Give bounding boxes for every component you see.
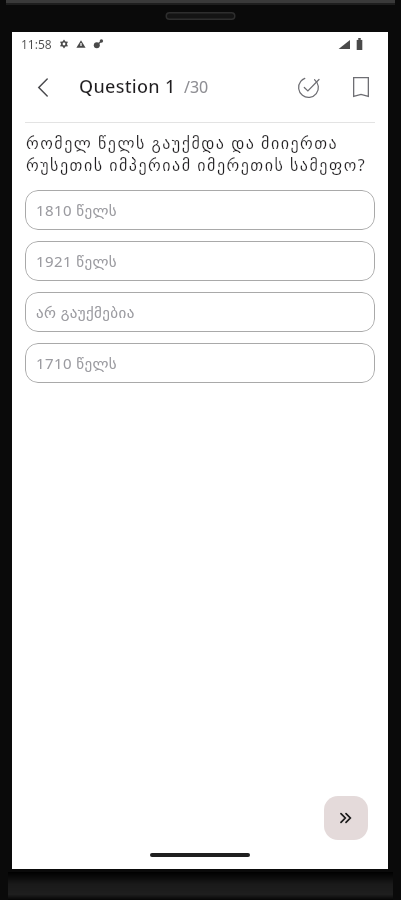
button[interactable]: 1810 წელს bbox=[25, 190, 375, 230]
button[interactable]: Back bbox=[22, 66, 64, 108]
staticText: არ გაუქმებია bbox=[36, 302, 135, 322]
staticText: /30 bbox=[184, 76, 209, 98]
button[interactable]: Bookmark bbox=[340, 66, 382, 108]
staticText: 11:58 bbox=[21, 36, 52, 52]
button[interactable]: არ გაუქმებია bbox=[25, 292, 375, 332]
staticText: 1921 წელს bbox=[36, 251, 118, 271]
button[interactable]: Mark answered bbox=[287, 66, 329, 108]
staticText: 1710 წელს bbox=[36, 353, 118, 373]
button[interactable]: 1921 წელს bbox=[25, 241, 375, 281]
button[interactable]: Next question bbox=[324, 796, 368, 840]
staticText: რომელ წელს გაუქმდა და მიიერთა რუსეთის იმ… bbox=[26, 132, 374, 175]
staticText: Question 1 bbox=[79, 74, 176, 99]
staticText: 1810 წელს bbox=[36, 200, 118, 220]
button[interactable]: 1710 წელს bbox=[25, 343, 375, 383]
